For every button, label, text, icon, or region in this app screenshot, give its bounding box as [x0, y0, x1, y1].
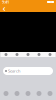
button[interactable]: Tool: [0, 52, 11, 57]
staticText: Search: [8, 68, 20, 74]
button[interactable]: Tool: [33, 52, 44, 57]
staticText: 9:41: [2, 0, 9, 5]
staticText: ‹: [2, 2, 5, 14]
button[interactable]: Tool: [11, 52, 22, 57]
button[interactable]: Search: [3, 67, 53, 75]
button[interactable]: App: [44, 90, 55, 97]
button[interactable]: App: [22, 90, 33, 97]
button[interactable]: App: [11, 90, 22, 97]
button[interactable]: App: [0, 90, 11, 97]
button[interactable]: Tool: [44, 52, 55, 57]
button[interactable]: App: [33, 90, 44, 97]
button[interactable]: Back: [0, 4, 8, 12]
button[interactable]: Tool: [22, 52, 33, 57]
